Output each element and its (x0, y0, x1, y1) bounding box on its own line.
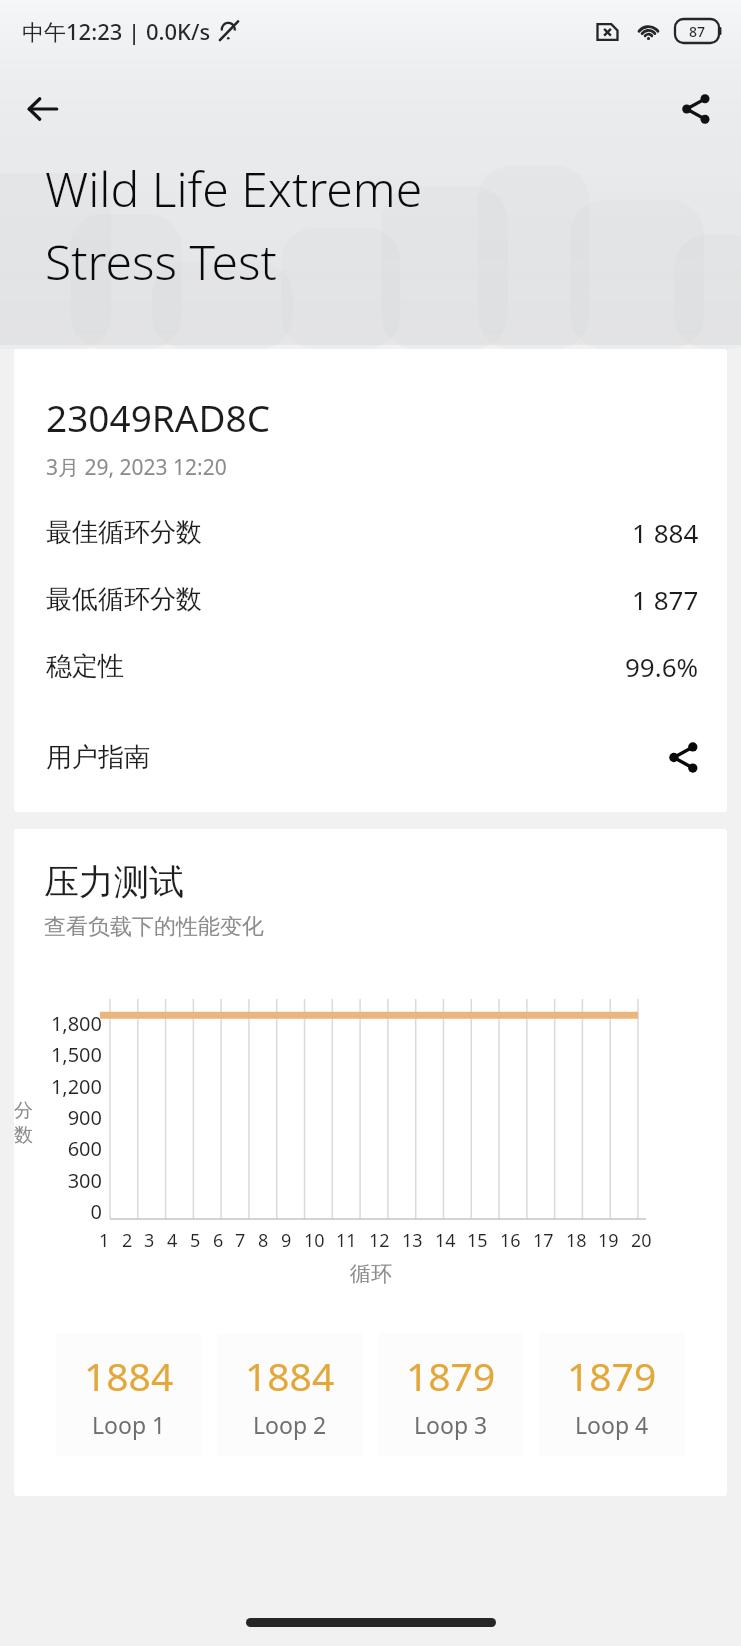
staticText: 16 (500, 1228, 521, 1253)
staticText: Loop 2 (253, 1409, 327, 1440)
button[interactable]: 用户指南 (46, 730, 699, 784)
button[interactable]: 1884 (56, 1333, 202, 1456)
staticText: 用户指南 (46, 741, 150, 774)
staticText: 3月 29, 2023 12:20 (46, 453, 227, 482)
staticText: 1 884 (632, 515, 699, 550)
staticText: 19 (598, 1228, 619, 1253)
staticText: 1,200 (24, 1073, 102, 1100)
staticText: Loop 1 (92, 1409, 166, 1440)
staticText: 600 (24, 1135, 102, 1162)
staticText: 87 (689, 22, 706, 41)
staticText: 数 (14, 1123, 33, 1147)
staticText: 300 (24, 1167, 102, 1194)
staticText: 6 (213, 1228, 224, 1253)
staticText: 18 (566, 1228, 587, 1253)
staticText: 23049RAD8C (46, 392, 271, 442)
staticText: 20 (631, 1228, 652, 1253)
staticText: 17 (533, 1228, 554, 1253)
staticText: 14 (435, 1228, 456, 1253)
staticText: 8 (258, 1228, 269, 1253)
staticText: 稳定性 (46, 650, 124, 683)
staticText: 1,800 (24, 1010, 102, 1037)
staticText: 1884 (84, 1349, 174, 1402)
staticText: 中午12:23 | 0.0K/s (22, 16, 211, 46)
staticText: Loop 3 (414, 1409, 488, 1440)
staticText: 最低循环分数 (46, 583, 202, 616)
staticText: 7 (235, 1228, 246, 1253)
staticText: 查看负载下的性能变化 (44, 913, 264, 941)
staticText: 1879 (406, 1349, 496, 1402)
staticText: 10 (304, 1228, 325, 1253)
staticText: 1,500 (24, 1041, 102, 1068)
staticText: Wild Life Extreme (45, 156, 423, 221)
staticText: 最佳循环分数 (46, 516, 202, 549)
staticText: 12 (369, 1228, 390, 1253)
button[interactable]: Back (14, 80, 72, 138)
staticText: 99.6% (625, 649, 699, 684)
staticText: 分 (14, 1099, 33, 1123)
staticText: 15 (467, 1228, 488, 1253)
staticText: 0 (24, 1198, 102, 1225)
button[interactable]: 1879 (539, 1333, 685, 1456)
button[interactable]: Share (667, 80, 725, 138)
staticText: 循环 (350, 1261, 392, 1287)
staticText: 压力测试 (44, 860, 184, 904)
staticText: 1 (99, 1228, 110, 1253)
staticText: 1884 (245, 1349, 335, 1402)
button[interactable]: 1884 (217, 1333, 363, 1456)
staticText: 1 877 (632, 582, 699, 617)
staticText: Stress Test (45, 229, 277, 294)
staticText: 900 (24, 1104, 102, 1131)
staticText: 9 (281, 1228, 292, 1253)
staticText: 13 (402, 1228, 423, 1253)
staticText: Loop 4 (575, 1409, 649, 1440)
staticText: 4 (167, 1228, 178, 1253)
staticText: 3 (144, 1228, 155, 1253)
staticText: 1879 (567, 1349, 657, 1402)
staticText: 2 (122, 1228, 133, 1253)
staticText: 11 (336, 1228, 357, 1253)
button[interactable]: 1879 (378, 1333, 524, 1456)
staticText: 5 (190, 1228, 201, 1253)
